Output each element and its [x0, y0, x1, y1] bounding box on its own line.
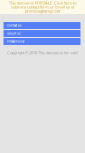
staticText: Privacy Policy	[7, 40, 24, 43]
staticText: About Us	[7, 32, 20, 35]
staticText: Contact Us	[7, 24, 21, 27]
staticText: primesage@xyz.net	[25, 8, 60, 14]
staticText: submit a contact form or email us at	[11, 4, 74, 10]
button[interactable]: Privacy Policy	[3, 38, 80, 45]
staticText: This domain is FOR SALE. Click here to	[9, 0, 76, 6]
staticText: Copyright © 2018 This domain is for sale…	[7, 50, 78, 55]
button[interactable]: Contact Us	[3, 22, 80, 29]
button[interactable]: About Us	[3, 30, 80, 37]
